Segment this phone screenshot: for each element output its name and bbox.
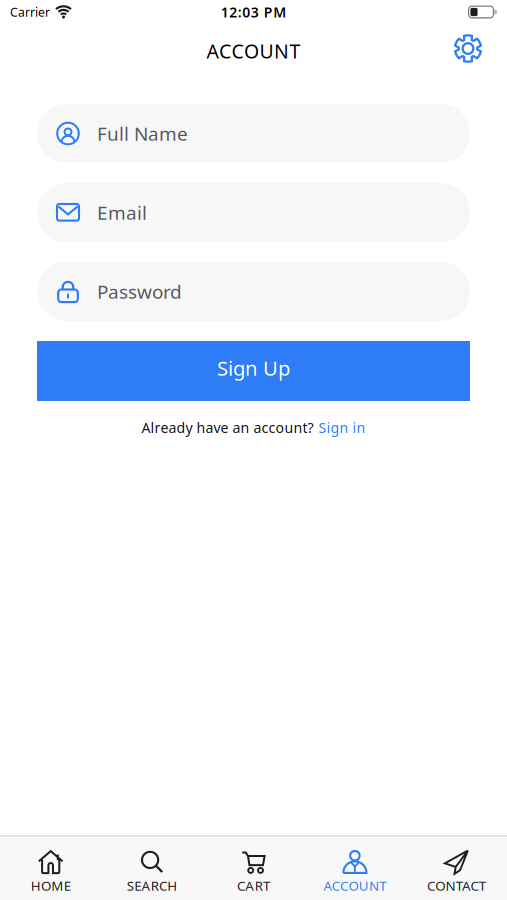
button[interactable]: Full Name [37, 104, 470, 163]
staticText: Already have an account? [141, 418, 313, 437]
staticText: ACCOUNT [323, 876, 386, 895]
button[interactable]: Password [37, 262, 470, 321]
staticText: Sign in [318, 418, 365, 437]
staticText: HOME [31, 876, 71, 895]
staticText: Full Name [97, 121, 188, 146]
staticText: SEARCH [127, 876, 177, 895]
staticText: 12:03 PM [221, 2, 286, 22]
staticText: ACCOUNT [206, 38, 300, 64]
staticText: Sign Up [217, 354, 290, 382]
button[interactable]: Sign in [318, 418, 365, 437]
button[interactable]: CONTACT [406, 849, 507, 895]
button[interactable]: SEARCH [101, 849, 203, 895]
button[interactable]: HOME [0, 849, 101, 895]
button[interactable]: Settings [454, 34, 482, 62]
button[interactable]: ACCOUNT [304, 849, 406, 895]
button[interactable]: Email [37, 183, 470, 242]
staticText: Email [97, 200, 147, 225]
button[interactable]: Sign Up [37, 341, 470, 401]
staticText: CONTACT [427, 876, 486, 895]
staticText: Carrier [10, 4, 50, 20]
staticText: CART [237, 876, 270, 895]
button[interactable]: CART [203, 849, 304, 895]
staticText: Password [97, 279, 182, 304]
